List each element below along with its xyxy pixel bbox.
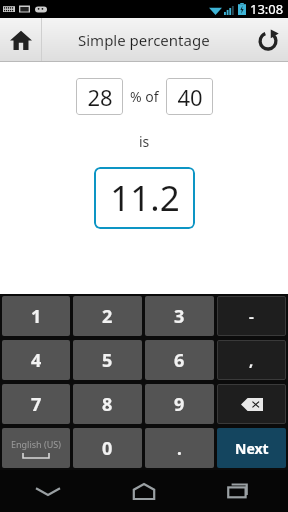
button[interactable]: Home bbox=[0, 18, 41, 61]
button[interactable]: - bbox=[217, 296, 286, 336]
staticText: is bbox=[139, 132, 150, 151]
staticText: 3 bbox=[174, 304, 185, 329]
button[interactable]: Home bbox=[96, 470, 192, 512]
staticText: - bbox=[249, 306, 254, 326]
button[interactable]: Recent apps bbox=[192, 470, 288, 512]
staticText: 1 bbox=[31, 304, 42, 329]
button[interactable]: 40 bbox=[166, 78, 213, 115]
staticText: 9 bbox=[174, 392, 185, 417]
staticText: 8 bbox=[102, 392, 113, 417]
staticText: , bbox=[249, 350, 254, 370]
staticText: 7 bbox=[31, 392, 42, 417]
button[interactable]: . bbox=[145, 428, 214, 468]
staticText: Next bbox=[235, 439, 269, 458]
button[interactable]: English (US) bbox=[2, 428, 70, 468]
staticText: . bbox=[177, 437, 182, 460]
button[interactable]: 5 bbox=[73, 340, 142, 380]
button[interactable]: 4 bbox=[2, 340, 70, 380]
staticText: 2 bbox=[102, 304, 113, 329]
staticText: % of bbox=[130, 87, 159, 106]
staticText: 28 bbox=[87, 82, 113, 112]
button[interactable]: 6 bbox=[145, 340, 214, 380]
button[interactable]: 9 bbox=[145, 384, 214, 424]
button[interactable]: , bbox=[217, 340, 286, 380]
button[interactable]: 28 bbox=[76, 78, 123, 115]
button[interactable]: 3 bbox=[145, 296, 214, 336]
button[interactable]: 8 bbox=[73, 384, 142, 424]
staticText: English (US) bbox=[11, 438, 61, 450]
button[interactable]: Next bbox=[217, 428, 286, 468]
staticText: 13:08 bbox=[250, 0, 284, 18]
staticText: 11.2 bbox=[110, 174, 180, 222]
button[interactable]: 11.2 bbox=[94, 167, 195, 229]
button[interactable]: Hide keyboard bbox=[0, 470, 96, 512]
button[interactable]: 0 bbox=[73, 428, 142, 468]
button[interactable]: Delete bbox=[217, 384, 286, 424]
button[interactable]: 1 bbox=[2, 296, 70, 336]
button[interactable]: 7 bbox=[2, 384, 70, 424]
staticText: 4 bbox=[31, 348, 42, 373]
staticText: 6 bbox=[174, 348, 185, 373]
staticText: 40 bbox=[177, 82, 203, 112]
staticText: 0 bbox=[102, 436, 113, 461]
button[interactable]: Refresh bbox=[247, 18, 288, 61]
staticText: 5 bbox=[102, 348, 113, 373]
button[interactable]: 2 bbox=[73, 296, 142, 336]
staticText: Simple percentage bbox=[78, 30, 210, 50]
